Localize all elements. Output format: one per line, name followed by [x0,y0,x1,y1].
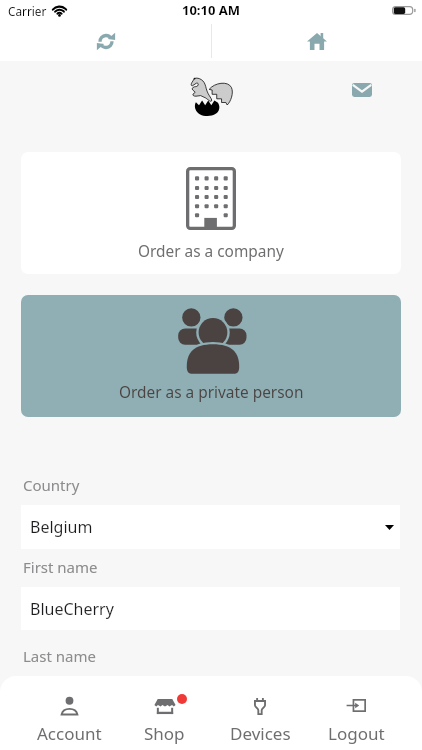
staticText: Account [37,722,102,745]
button[interactable]: Devices [212,676,308,745]
staticText: BlueCherry [30,598,114,620]
staticText: Order as a private person [119,382,304,403]
button[interactable]: BlueCherry [21,587,400,630]
staticText: Shop [144,722,185,745]
button[interactable]: Logout [308,676,404,745]
staticText: Belgium [30,516,93,538]
button[interactable]: Order as a private person [21,295,401,417]
button[interactable]: Shop [117,676,212,745]
button[interactable]: Refresh [0,22,211,61]
staticText: Last name [23,646,96,666]
button[interactable]: Account [22,676,117,745]
button[interactable]: Messages [344,72,380,108]
button[interactable]: Belgium [21,505,400,549]
staticText: First name [23,557,98,577]
staticText: Devices [230,722,291,745]
staticText: 10:10 AM [182,1,241,19]
staticText: Country [23,475,80,495]
staticText: Logout [328,722,385,745]
button[interactable]: Home [211,22,422,61]
button[interactable]: Order as a company [21,152,401,274]
staticText: Carrier [8,3,47,19]
staticText: Order as a company [138,241,284,262]
